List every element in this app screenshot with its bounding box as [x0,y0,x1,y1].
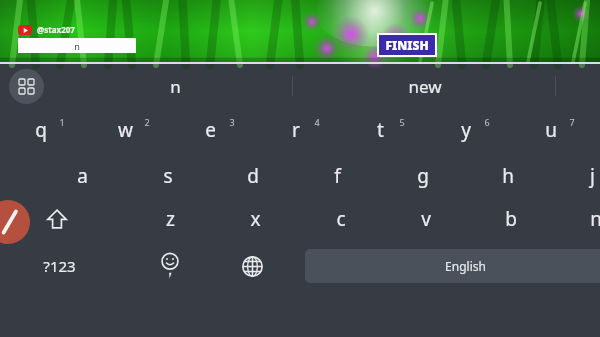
staticText: @stax207 [37,24,75,35]
button[interactable]: English [305,249,600,283]
staticText: n [170,75,181,98]
button[interactable]: d [210,154,295,198]
staticText: a [77,163,88,189]
button[interactable]: w [83,108,168,152]
button[interactable]: ?123 [20,244,98,288]
staticText: new [408,75,442,98]
button[interactable]: n [18,38,136,53]
staticText: y [461,117,471,143]
button[interactable]: h [465,154,550,198]
staticText: d [247,163,259,189]
button[interactable]: s [125,154,210,198]
staticText: n [74,40,80,52]
staticText: z [166,206,175,232]
button[interactable]: c [298,197,383,241]
button[interactable]: a [40,154,125,198]
button[interactable]: b [468,197,553,241]
button[interactable]: Change language [222,244,282,288]
staticText: FINISH [385,37,429,53]
staticText: j [590,163,595,189]
button[interactable]: Compose [0,200,30,244]
staticText: v [421,206,431,232]
staticText: English [445,258,486,274]
staticText: 2 [144,116,150,128]
staticText: f [334,163,341,189]
staticText: 6 [484,116,490,128]
staticText: 1 [59,116,65,128]
button[interactable]: z [128,197,213,241]
staticText: 4 [314,116,320,128]
staticText: g [417,163,429,189]
staticText: s [163,163,173,189]
button[interactable]: t [338,108,423,152]
button[interactable]: n [60,64,290,108]
button[interactable]: Shift [26,197,88,241]
button[interactable]: g [380,154,465,198]
button[interactable]: Emoji [140,244,200,288]
staticText: u [545,117,557,143]
button[interactable]: y [423,108,508,152]
staticText: q [35,117,47,143]
staticText: 3 [229,116,235,128]
staticText: b [505,206,517,232]
staticText: e [205,117,216,143]
button[interactable]: e [168,108,253,152]
button[interactable]: FINISH [385,37,429,53]
staticText: r [292,117,300,143]
button[interactable]: q [0,108,83,152]
staticText: 7 [569,116,575,128]
button[interactable]: j [550,154,600,198]
staticText: c [336,206,346,232]
staticText: ?123 [43,256,76,276]
button[interactable]: f [295,154,380,198]
button[interactable]: x [213,197,298,241]
button[interactable]: u [508,108,593,152]
staticText: x [250,206,261,232]
staticText: t [377,117,384,143]
button[interactable]: n [553,197,600,241]
staticText: w [118,117,133,143]
staticText: 5 [399,116,405,128]
button[interactable]: new [300,64,550,108]
button[interactable]: r [253,108,338,152]
staticText: h [502,163,514,189]
staticText: n [590,206,600,232]
button[interactable]: v [383,197,468,241]
button[interactable]: Toolbar [9,69,44,104]
